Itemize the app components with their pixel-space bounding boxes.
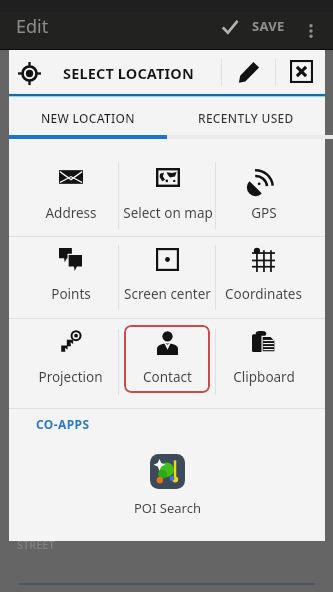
staticText: CO-APPS [36, 416, 90, 432]
button[interactable] [215, 319, 312, 408]
staticText: Edit [16, 14, 49, 39]
staticText: Select on map [123, 204, 213, 222]
button[interactable] [215, 140, 312, 236]
button[interactable] [119, 237, 216, 318]
button[interactable] [119, 140, 216, 236]
staticText: NEW LOCATION [41, 110, 135, 126]
button[interactable]: NEW LOCATION [9, 96, 167, 139]
staticText: STREET [17, 537, 55, 552]
button[interactable]: Edit [222, 50, 275, 93]
staticText: Contact [143, 368, 192, 386]
staticText: RECENTLY USED [198, 110, 294, 126]
button[interactable] [22, 140, 119, 236]
button[interactable]: RECENTLY USED [167, 96, 325, 139]
staticText: Coordinates [225, 285, 302, 303]
staticText: SAVE [252, 17, 285, 35]
button[interactable]: More options [295, 12, 327, 49]
staticText: Address [45, 204, 97, 222]
staticText: SELECT LOCATION [63, 63, 194, 83]
button[interactable]: Close [276, 50, 326, 93]
button[interactable] [22, 319, 119, 408]
staticText: GPS [251, 204, 277, 222]
button[interactable] [124, 325, 210, 393]
staticText: Screen center [124, 285, 211, 303]
staticText: Clipboard [233, 368, 295, 386]
staticText: POI Search [134, 499, 201, 517]
staticText: Points [51, 285, 91, 303]
staticText: Projection [38, 368, 103, 386]
button[interactable] [22, 237, 119, 318]
button[interactable]: SAVE [212, 12, 290, 49]
button[interactable] [215, 237, 312, 318]
button[interactable]: POI Search [119, 454, 215, 517]
